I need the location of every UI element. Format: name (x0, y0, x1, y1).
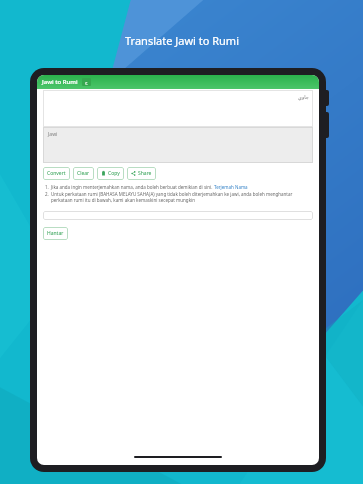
staticText: Jawi to Rumi (42, 78, 78, 86)
staticText: 1. (45, 184, 49, 190)
staticText: جاوي (298, 94, 309, 100)
staticText: Jawi (48, 131, 58, 138)
staticText: Translate Jawi to Rumi (125, 33, 239, 48)
staticText: Convert (47, 170, 66, 177)
staticText: ج (85, 80, 88, 85)
button[interactable]: Convert (43, 167, 70, 180)
staticText: Jika anda ingin menterjemahkan nama, and… (51, 184, 214, 190)
button[interactable]: Terjemah Nama (214, 184, 248, 190)
button[interactable]: Share (127, 167, 156, 180)
staticText: Copy (108, 170, 120, 177)
button[interactable]: Language (82, 78, 91, 86)
button[interactable]: Hantar (43, 227, 68, 240)
button[interactable]: Clear (73, 167, 94, 180)
staticText: 2. (45, 191, 49, 197)
staticText: Untuk perkataan rumi (BAHASA MELAYU SAHA… (51, 191, 313, 203)
button[interactable]: جاوي (43, 90, 313, 127)
button[interactable]: Jawi (43, 127, 313, 163)
staticText: Hantar (47, 230, 64, 237)
staticText: Clear (77, 170, 90, 177)
button[interactable] (43, 211, 313, 220)
button[interactable]: Copy (97, 167, 124, 180)
staticText: Share (138, 170, 152, 177)
